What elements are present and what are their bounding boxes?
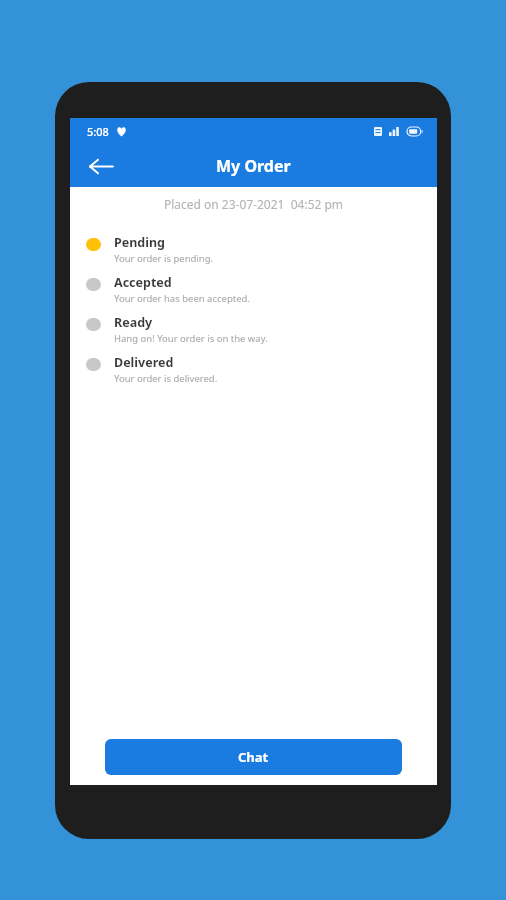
staticText: Your order is delivered. — [114, 372, 218, 385]
button[interactable]: Ready — [70, 314, 437, 354]
staticText: Placed on 23-07-2021 04:52 pm — [70, 196, 437, 212]
staticText: Your order has been accepted. — [114, 292, 250, 305]
staticText: My Order — [216, 155, 291, 177]
staticText: Ready — [114, 314, 153, 331]
staticText: Your order is pending. — [114, 252, 214, 265]
button[interactable]: Pending — [70, 234, 437, 274]
staticText: Chat — [238, 748, 269, 766]
staticText: Pending — [114, 234, 166, 251]
staticText: Hang on! Your order is on the way. — [114, 332, 268, 345]
button[interactable]: Accepted — [70, 274, 437, 314]
button[interactable]: Delivered — [70, 354, 437, 394]
button[interactable]: Chat — [105, 739, 402, 775]
staticText: 5:08 — [87, 124, 109, 139]
staticText: Accepted — [114, 274, 172, 291]
staticText: Delivered — [114, 354, 174, 371]
button[interactable]: Back — [82, 148, 118, 184]
